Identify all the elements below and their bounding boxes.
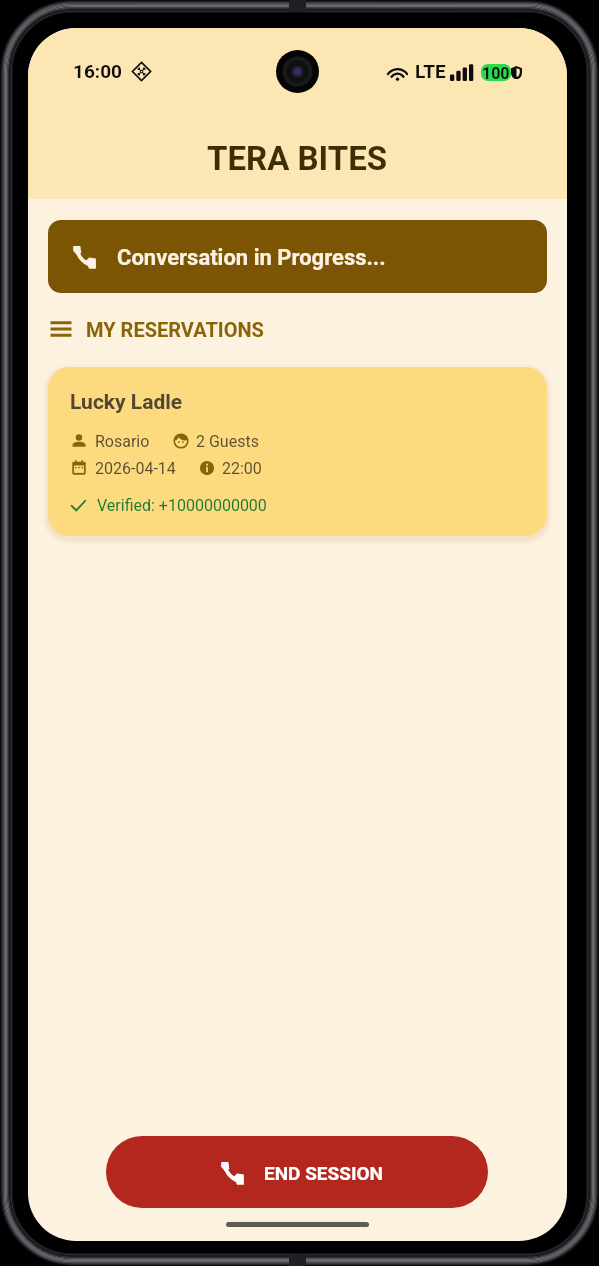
staticText: Lucky Ladle	[70, 390, 183, 415]
staticText: 2026-04-14	[95, 459, 176, 478]
staticText: LTE	[415, 60, 446, 82]
staticText: Conversation in Progress...	[117, 245, 386, 271]
staticText: 2 Guests	[196, 432, 259, 451]
button[interactable]: END SESSION	[106, 1136, 488, 1208]
staticText: TERA BITES	[207, 139, 388, 178]
staticText: MY RESERVATIONS	[86, 318, 264, 341]
staticText: 22:00	[222, 459, 262, 478]
button[interactable]: Lucky Ladle	[48, 367, 547, 536]
staticText: 16:00	[73, 60, 122, 82]
staticText: Rosario	[95, 432, 150, 451]
button[interactable]: Conversation in Progress...	[48, 220, 547, 293]
button[interactable]: MY RESERVATIONS	[48, 314, 264, 344]
staticText: Verified: +10000000000	[97, 496, 267, 515]
staticText: 100	[482, 64, 510, 81]
staticText: END SESSION	[264, 1162, 384, 1184]
